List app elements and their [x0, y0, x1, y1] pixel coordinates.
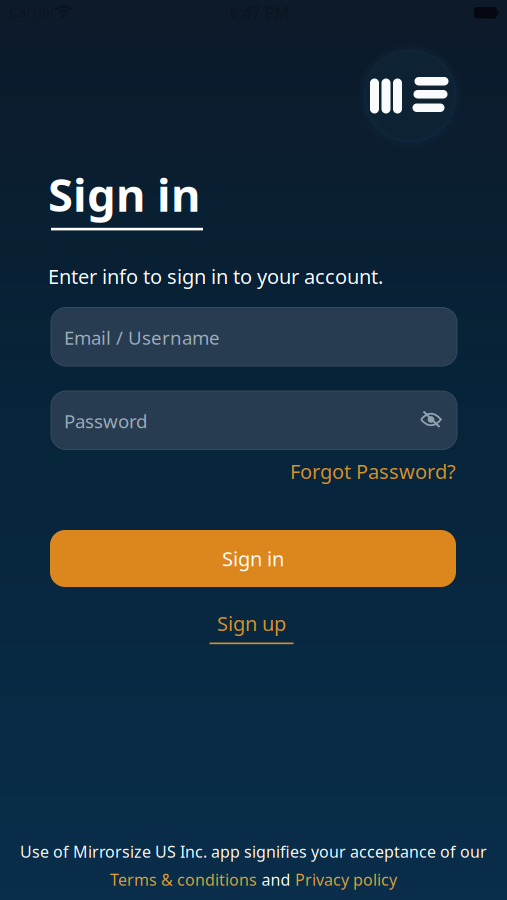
staticText: Terms & conditions: [110, 869, 257, 890]
staticText: 6:47 PM: [229, 2, 289, 23]
button[interactable]: Email / Username: [51, 307, 457, 366]
staticText: Forgot Password?: [290, 458, 456, 485]
staticText: Sign in: [222, 545, 284, 572]
staticText: Email / Username: [64, 325, 220, 350]
button[interactable]: Privacy policy: [295, 869, 397, 890]
staticText: and: [261, 869, 290, 890]
staticText: Password: [64, 408, 147, 433]
staticText: Privacy policy: [295, 869, 397, 890]
staticText: Sign up: [217, 610, 286, 637]
button[interactable]: Sign in: [50, 530, 456, 587]
staticText: Enter info to sign in to your account.: [48, 263, 383, 290]
staticText: Use of Mirrorsize US Inc. app signifies …: [20, 841, 487, 862]
staticText: Sign in: [48, 164, 200, 224]
button[interactable]: Terms & conditions: [110, 869, 257, 890]
button[interactable]: Forgot Password?: [290, 458, 456, 485]
button[interactable]: Password: [51, 391, 457, 449]
button[interactable]: Sign up: [209, 610, 293, 644]
